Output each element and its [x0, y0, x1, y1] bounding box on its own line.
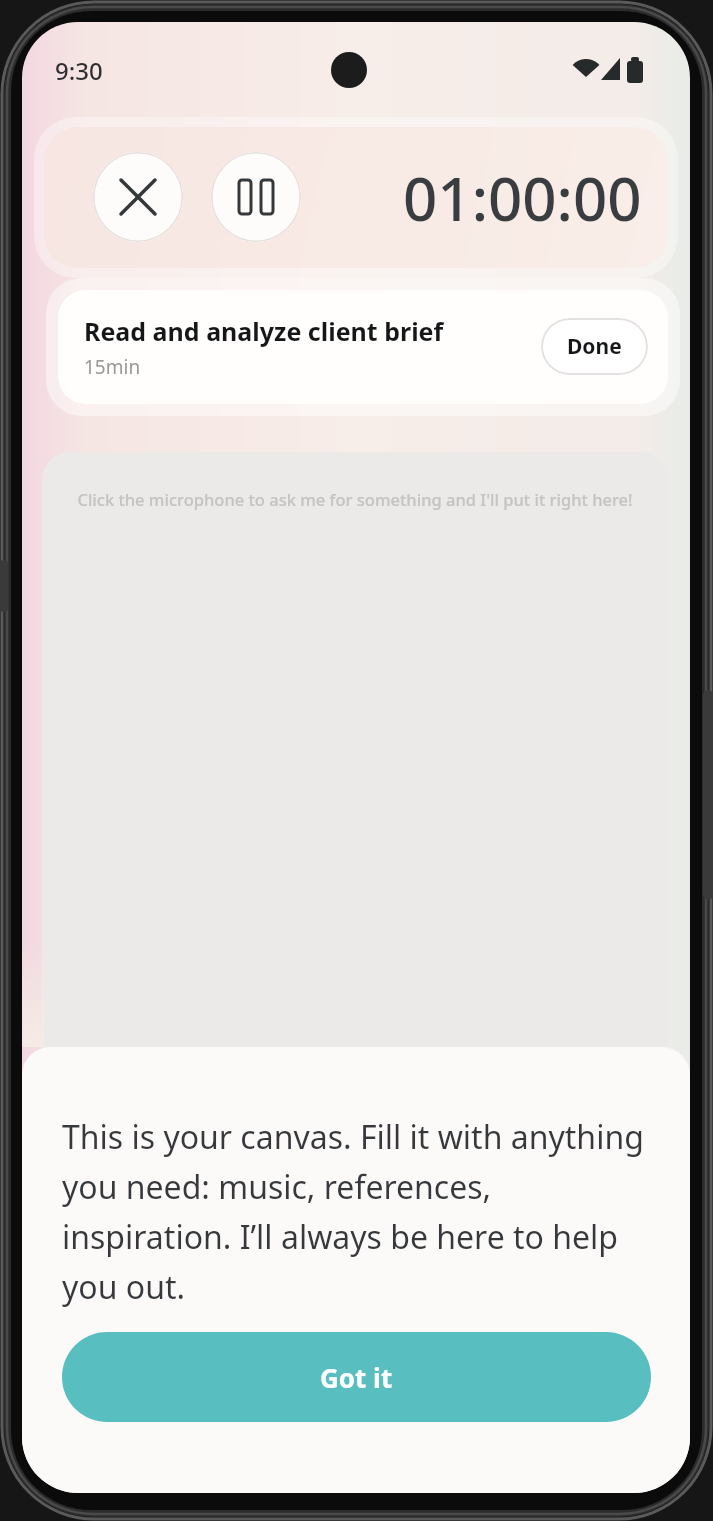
staticText: Got it [320, 1360, 393, 1395]
staticText: Read and analyze client brief [84, 314, 444, 348]
button[interactable]: Done [541, 318, 648, 375]
staticText: 01:00:00 [403, 157, 642, 239]
staticText: This is your canvas. Fill it with anythi… [62, 1115, 654, 1309]
staticText: 15min [84, 354, 141, 380]
button[interactable] [211, 152, 301, 242]
staticText: Click the microphone to ask me for somet… [42, 488, 668, 510]
button[interactable] [93, 152, 183, 242]
button[interactable]: Got it [62, 1332, 651, 1422]
staticText: Done [567, 332, 622, 361]
staticText: 9:30 [55, 54, 103, 87]
